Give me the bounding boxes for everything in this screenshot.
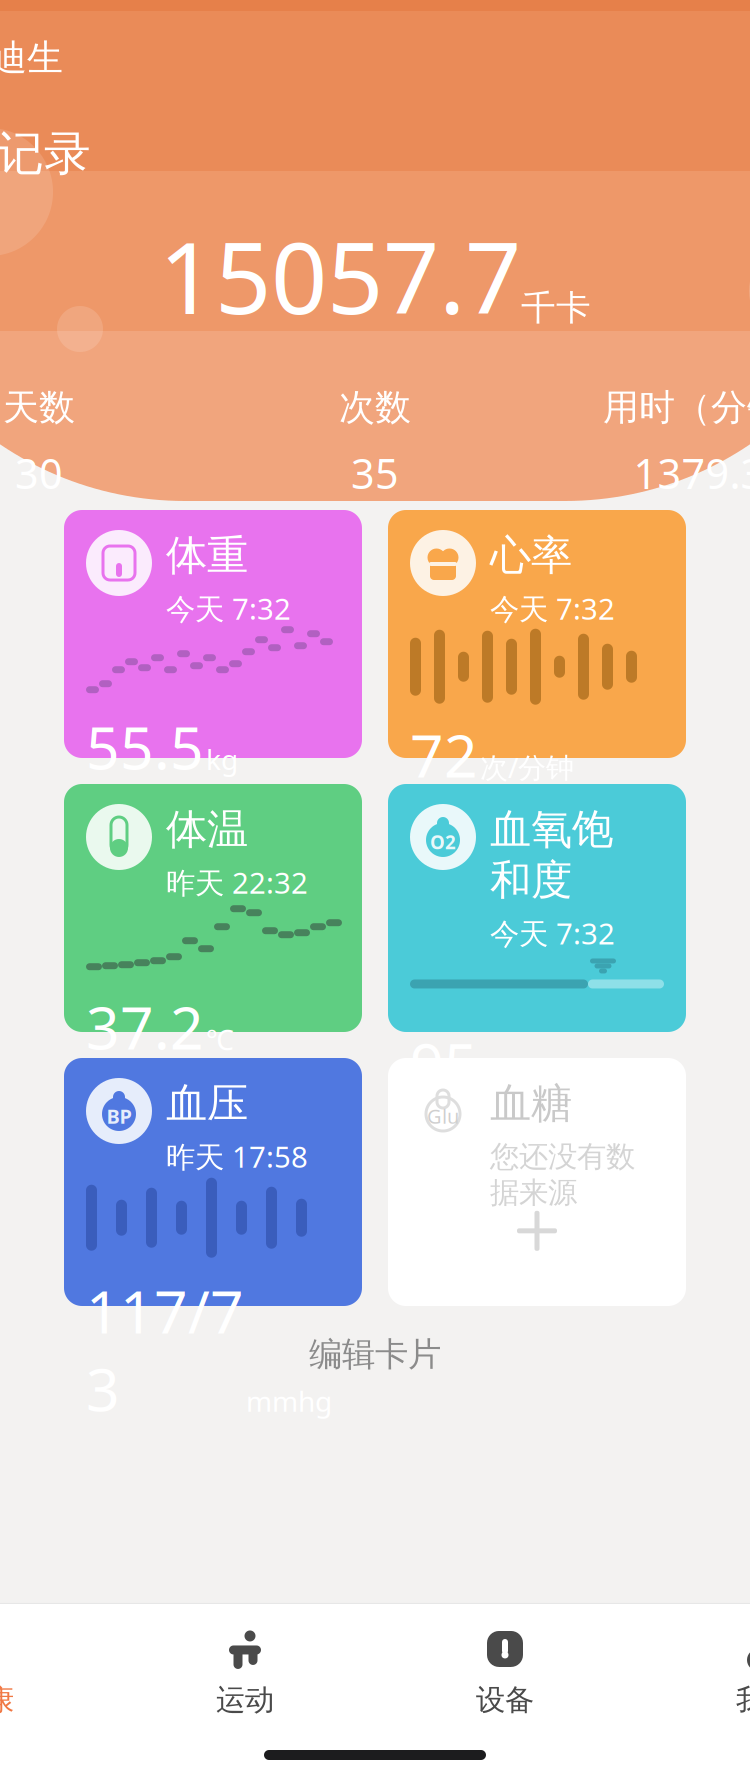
button[interactable]: O2: [388, 784, 686, 1032]
staticText: 今天 7:32: [490, 913, 615, 952]
staticText: 您还没有数据来源: [490, 1139, 635, 1211]
staticText: 体温: [166, 804, 248, 855]
staticText: 健康: [0, 1682, 14, 1718]
staticText: kg: [206, 740, 238, 778]
staticText: 次/分钟: [480, 748, 574, 786]
button[interactable]: 体温: [64, 784, 362, 1032]
staticText: 次数: [339, 385, 411, 429]
staticText: 72: [410, 716, 478, 794]
staticText: 15057.7: [159, 210, 521, 341]
button[interactable]: 心率: [388, 510, 686, 758]
staticText: 今天 7:32: [490, 589, 615, 628]
staticText: 用时（分钟）: [603, 385, 750, 429]
staticText: 天数: [3, 385, 75, 429]
button[interactable]: 健康: [0, 1622, 115, 1722]
button[interactable]: BP: [64, 1058, 362, 1306]
staticText: mmhg: [246, 1382, 332, 1420]
staticText: Glu: [427, 1103, 459, 1129]
staticText: 我的: [736, 1682, 750, 1718]
button[interactable]: 运动: [115, 1622, 375, 1722]
staticText: 37.2: [86, 988, 204, 1066]
staticText: 血糖: [490, 1078, 572, 1129]
button[interactable]: 我的: [635, 1622, 750, 1722]
staticText: O2: [430, 830, 456, 854]
staticText: 1379.35: [633, 445, 750, 500]
staticText: 今天 7:32: [166, 589, 291, 628]
staticText: 编辑卡片: [309, 1334, 441, 1375]
staticText: 117/73: [86, 1272, 244, 1427]
staticText: 设备: [476, 1682, 534, 1718]
staticText: 体重: [166, 530, 248, 581]
staticText: 30: [15, 445, 63, 500]
staticText: BP: [106, 1103, 131, 1129]
staticText: ℃: [206, 1020, 234, 1058]
staticText: %: [480, 1057, 503, 1094]
button[interactable]: 设备: [375, 1622, 635, 1722]
staticText: 95: [410, 1024, 478, 1102]
staticText: 昨天 22:32: [166, 863, 308, 902]
staticText: 35: [351, 445, 399, 500]
staticText: 55.5: [86, 708, 204, 786]
button[interactable]: 编辑卡片: [0, 1306, 750, 1403]
staticText: 千卡: [521, 287, 591, 329]
button[interactable]: 体重: [64, 510, 362, 758]
staticText: 昨天 17:58: [166, 1137, 308, 1176]
staticText: 心率: [490, 530, 572, 581]
button[interactable]: Glu: [388, 1058, 686, 1306]
staticText: 爱迪生: [0, 36, 63, 80]
staticText: 运动记录: [0, 125, 91, 182]
staticText: 运动: [216, 1682, 274, 1718]
staticText: 血氧饱和度: [490, 804, 613, 905]
staticText: 血压: [166, 1078, 248, 1129]
